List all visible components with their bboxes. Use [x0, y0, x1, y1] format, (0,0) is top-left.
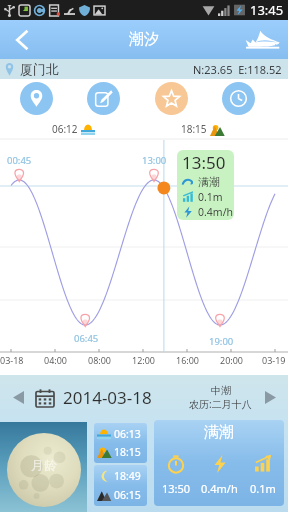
staticText: 厦门北: [20, 61, 59, 77]
staticText: 13:45: [250, 1, 284, 19]
button[interactable]: Previous day: [0, 375, 36, 420]
staticText: 13:00: [142, 154, 167, 167]
staticText: 0.4m/h: [198, 205, 234, 219]
staticText: 00:45: [7, 154, 32, 167]
staticText: 18:49: [114, 469, 141, 483]
staticText: 18:15: [114, 445, 141, 459]
staticText: 08:00: [88, 354, 112, 366]
button[interactable]: 0.1m: [241, 445, 284, 506]
button[interactable]: 18:49: [94, 465, 147, 506]
staticText: 2014-03-18: [63, 386, 152, 409]
staticText: 03-19: [262, 354, 286, 366]
button[interactable]: 0.4m/h: [198, 445, 241, 506]
staticText: 03-18: [0, 354, 24, 366]
staticText: 月龄: [31, 457, 57, 473]
staticText: 06:15: [114, 488, 141, 502]
button[interactable]: 13:50: [154, 445, 198, 506]
button[interactable]: 06:13: [94, 423, 147, 463]
staticText: 潮汐: [129, 30, 159, 49]
staticText: 18:15: [181, 122, 207, 136]
staticText: 13:50: [182, 151, 226, 174]
staticText: 0.1m: [250, 481, 276, 496]
staticText: 满潮: [198, 175, 220, 189]
button[interactable]: Next day: [252, 375, 288, 420]
staticText: 中潮: [211, 384, 231, 397]
button[interactable]: Back: [0, 20, 44, 59]
staticText: 农历:二月十八: [189, 397, 252, 411]
staticText: 19:00: [209, 335, 234, 348]
staticText: 13:50: [162, 481, 191, 496]
staticText: 0.1m: [198, 190, 223, 204]
staticText: 06:12: [52, 122, 78, 136]
staticText: 04:00: [44, 354, 68, 366]
button[interactable]: 满潮: [154, 420, 284, 506]
button[interactable]: Sailboat: [236, 20, 288, 59]
staticText: N:23.65 E:118.52: [193, 62, 282, 77]
staticText: 12:00: [132, 354, 156, 366]
button[interactable]: Favorite: [155, 82, 188, 115]
button[interactable]: 13:50: [177, 150, 234, 220]
staticText: 06:45: [74, 332, 99, 345]
staticText: 20:00: [220, 354, 244, 366]
button[interactable]: Moon phase: [0, 422, 87, 512]
button[interactable]: Time: [222, 82, 255, 115]
staticText: 满潮: [204, 423, 234, 442]
staticText: 0.4m/h: [201, 481, 238, 496]
button[interactable]: Location: [20, 82, 53, 115]
staticText: 16:00: [176, 354, 200, 366]
button[interactable]: Edit: [87, 82, 120, 115]
staticText: 06:13: [114, 427, 141, 441]
